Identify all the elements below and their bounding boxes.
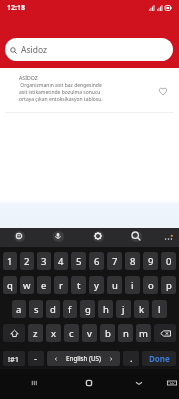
button[interactable]: English (US) bbox=[47, 351, 120, 366]
staticText: t bbox=[77, 279, 81, 292]
button[interactable]: 9 bbox=[143, 252, 158, 270]
button[interactable]: 5 bbox=[71, 252, 86, 270]
button[interactable]: Switch keyboard bbox=[158, 369, 179, 397]
staticText: s bbox=[34, 303, 39, 316]
button[interactable]: y bbox=[89, 276, 104, 294]
staticText: 8 bbox=[130, 255, 136, 268]
staticText: asit istikametinde bozulma sonucu bbox=[19, 89, 101, 96]
staticText: a bbox=[16, 303, 22, 316]
staticText: b bbox=[105, 327, 111, 340]
button[interactable]: w bbox=[20, 276, 34, 294]
button[interactable]: Voice input bbox=[50, 228, 66, 244]
button[interactable]: Home bbox=[75, 369, 103, 397]
staticText: o bbox=[148, 279, 154, 292]
staticText: ortaya çıkan entoksikasyon tablosu. bbox=[19, 96, 103, 103]
staticText: x bbox=[51, 327, 57, 340]
button[interactable]: o bbox=[143, 276, 158, 294]
button[interactable]: 2 bbox=[20, 252, 34, 270]
staticText: q bbox=[7, 279, 13, 292]
staticText: 5 bbox=[76, 255, 82, 268]
button[interactable]: More options bbox=[160, 230, 176, 246]
button[interactable]: 7 bbox=[107, 252, 122, 270]
staticText: j bbox=[122, 303, 125, 316]
staticText: n bbox=[123, 327, 129, 340]
button[interactable]: Recents bbox=[20, 369, 48, 397]
staticText: d bbox=[50, 303, 56, 316]
button[interactable]: f bbox=[63, 300, 77, 318]
staticText: z bbox=[33, 327, 38, 340]
staticText: English (US) bbox=[66, 354, 101, 363]
staticText: 6 bbox=[94, 255, 100, 268]
button[interactable]: ASİDOZ bbox=[0, 68, 179, 113]
staticText: Asidoz bbox=[21, 44, 47, 56]
button[interactable]: . bbox=[123, 351, 139, 366]
staticText: l bbox=[158, 303, 161, 316]
button[interactable]: Favorite bbox=[152, 80, 174, 102]
button[interactable]: 0 bbox=[161, 252, 176, 270]
staticText: 0 bbox=[166, 255, 172, 268]
staticText: f bbox=[68, 303, 72, 316]
button[interactable]: s bbox=[29, 300, 43, 318]
button[interactable]: Asidoz bbox=[5, 38, 173, 61]
staticText: Done bbox=[149, 353, 170, 364]
button[interactable]: v bbox=[82, 324, 97, 342]
button[interactable]: Stickers bbox=[11, 228, 27, 244]
staticText: i bbox=[131, 279, 134, 292]
staticText: 1 bbox=[7, 255, 13, 268]
button[interactable]: x bbox=[46, 324, 61, 342]
button[interactable]: e bbox=[37, 276, 51, 294]
button[interactable]: 8 bbox=[125, 252, 140, 270]
button[interactable]: Hide keyboard bbox=[125, 369, 153, 397]
button[interactable]: l bbox=[152, 300, 167, 318]
button[interactable]: d bbox=[46, 300, 60, 318]
staticText: 4 bbox=[58, 255, 64, 268]
button[interactable]: a bbox=[12, 300, 26, 318]
staticText: 7 bbox=[112, 255, 118, 268]
staticText: p bbox=[166, 279, 172, 292]
button[interactable]: 4 bbox=[54, 252, 68, 270]
button[interactable]: n bbox=[118, 324, 133, 342]
staticText: h bbox=[103, 303, 109, 316]
button[interactable]: h bbox=[98, 300, 113, 318]
button[interactable]: k bbox=[134, 300, 149, 318]
button[interactable]: u bbox=[107, 276, 122, 294]
button[interactable]: - bbox=[28, 351, 44, 366]
staticText: 3 bbox=[41, 255, 47, 268]
button[interactable]: i bbox=[125, 276, 140, 294]
staticText: 9 bbox=[148, 255, 154, 268]
button[interactable]: b bbox=[100, 324, 115, 342]
staticText: 12:18 bbox=[7, 3, 25, 13]
button[interactable]: t bbox=[71, 276, 86, 294]
button[interactable]: Done bbox=[142, 351, 176, 366]
button[interactable]: !#1 bbox=[3, 351, 25, 366]
button[interactable]: r bbox=[54, 276, 68, 294]
staticText: Organizmanın asit baz dengesinde bbox=[19, 82, 102, 89]
staticText: v bbox=[87, 327, 92, 340]
button[interactable]: 6 bbox=[89, 252, 104, 270]
button[interactable]: m bbox=[136, 324, 151, 342]
staticText: k bbox=[139, 303, 145, 316]
staticText: u bbox=[112, 279, 118, 292]
button[interactable]: Search bbox=[128, 228, 144, 244]
button[interactable]: z bbox=[28, 324, 43, 342]
button[interactable]: 1 bbox=[3, 252, 17, 270]
button[interactable]: c bbox=[64, 324, 79, 342]
staticText: !#1 bbox=[8, 354, 20, 364]
button[interactable]: 3 bbox=[37, 252, 51, 270]
staticText: 2 bbox=[24, 255, 30, 268]
button[interactable]: g bbox=[80, 300, 95, 318]
staticText: w bbox=[23, 279, 31, 292]
staticText: r bbox=[59, 279, 63, 292]
staticText: ASİDOZ bbox=[19, 74, 38, 81]
button[interactable]: Settings bbox=[90, 228, 106, 244]
button[interactable]: j bbox=[116, 300, 131, 318]
button[interactable]: q bbox=[3, 276, 17, 294]
staticText: m bbox=[139, 327, 148, 340]
staticText: c bbox=[69, 327, 74, 340]
staticText: y bbox=[94, 279, 99, 292]
staticText: e bbox=[41, 279, 47, 292]
button[interactable]: Shift bbox=[3, 324, 25, 342]
button[interactable]: p bbox=[161, 276, 176, 294]
button[interactable]: Backspace bbox=[154, 324, 176, 342]
staticText: - bbox=[34, 352, 38, 365]
